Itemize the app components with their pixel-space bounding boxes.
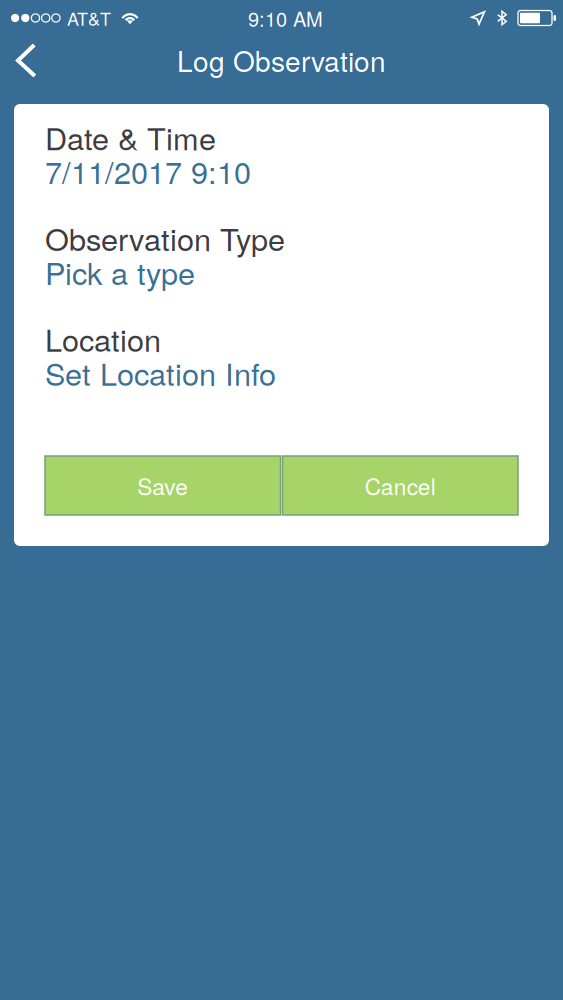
staticText: 9:10 AM	[248, 4, 323, 32]
staticText: 7/11/2017 9:10	[45, 149, 251, 193]
staticText: Save	[137, 469, 188, 502]
staticText: AT&T	[67, 5, 111, 31]
button[interactable]: Pick a type	[45, 250, 195, 294]
staticText: Log Observation	[177, 40, 386, 80]
staticText: Date & Time	[45, 115, 216, 159]
button[interactable]: Cancel	[282, 456, 518, 515]
staticText: Location	[45, 317, 161, 361]
staticText: Pick a type	[45, 250, 195, 294]
button[interactable]: Save	[45, 456, 280, 515]
button[interactable]: 7/11/2017 9:10	[45, 149, 251, 193]
button[interactable]: Back	[0, 39, 57, 101]
button[interactable]: Set Location Info	[45, 351, 276, 394]
staticText: Set Location Info	[45, 351, 276, 394]
staticText: Cancel	[365, 469, 436, 502]
staticText: Observation Type	[45, 216, 285, 260]
